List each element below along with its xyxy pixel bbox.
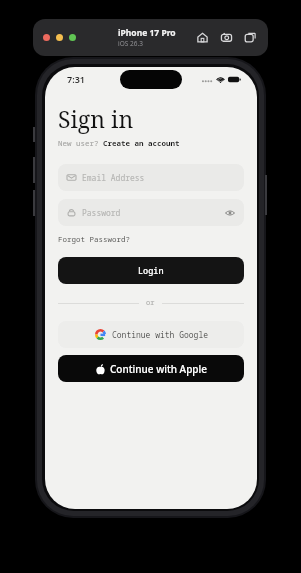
button[interactable]: Continue with Apple <box>58 355 244 382</box>
button[interactable]: New user? <box>58 138 180 148</box>
staticText: Continue with Apple <box>110 362 207 376</box>
button[interactable]: Login <box>58 257 244 284</box>
staticText: iOS 26.3 <box>118 39 143 48</box>
button[interactable]: Show password <box>224 207 236 219</box>
staticText: or <box>146 298 155 308</box>
staticText: Create an account <box>103 138 180 148</box>
staticText: Forgot Password? <box>58 234 130 244</box>
staticText: Login <box>138 265 164 277</box>
staticText: Continue with Google <box>112 329 208 340</box>
staticText: Sign in <box>58 103 134 134</box>
staticText: iPhone 17 Pro <box>118 27 176 39</box>
button[interactable]: Continue with Google <box>58 321 244 348</box>
button[interactable]: Screenshot <box>219 30 234 45</box>
button[interactable]: Email Address <box>58 164 244 191</box>
button[interactable]: Home <box>195 30 210 45</box>
staticText: Password <box>82 207 121 218</box>
staticText: New user? <box>58 138 103 148</box>
button[interactable]: Forgot Password? <box>58 234 130 244</box>
button[interactable]: Password <box>58 199 244 226</box>
staticText: Email Address <box>82 172 145 183</box>
button[interactable]: Record <box>243 30 258 45</box>
staticText: 7:31 <box>67 73 85 85</box>
